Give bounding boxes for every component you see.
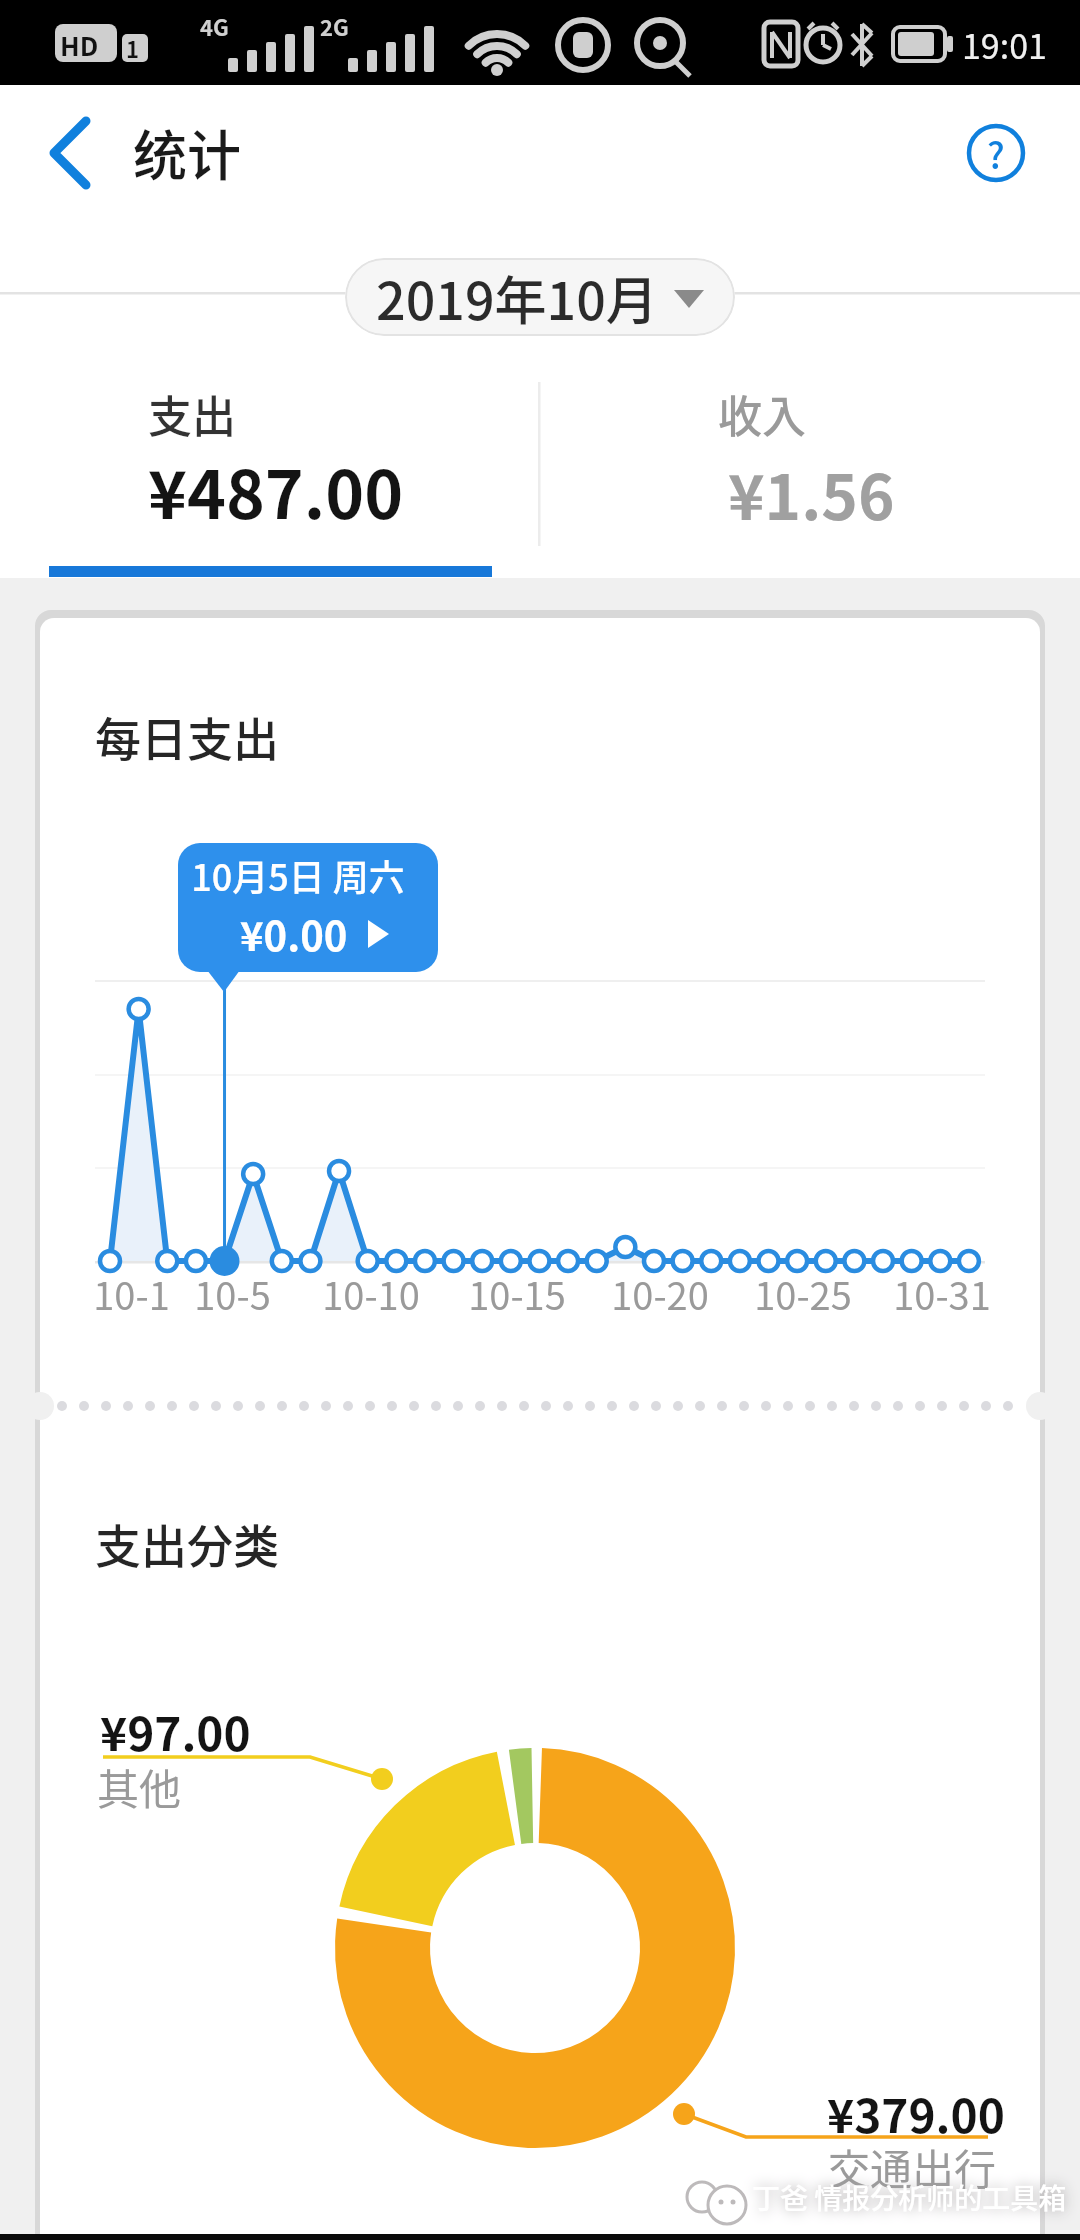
staticText: HD xyxy=(60,26,99,64)
staticText: ¥379.00 xyxy=(827,2080,1005,2147)
button[interactable]: 2019年10月 xyxy=(345,258,735,336)
staticText: 10-10 xyxy=(322,1266,420,1321)
staticText: 交通出行 xyxy=(828,2136,997,2197)
button[interactable] xyxy=(541,360,1031,575)
button[interactable] xyxy=(20,100,120,210)
staticText: 收入 xyxy=(718,382,806,446)
staticText: ¥1.56 xyxy=(728,448,895,538)
staticText: 丁爸 情报分析师的工具箱 xyxy=(752,2177,1067,2218)
staticText: ¥97.00 xyxy=(100,1698,251,1765)
staticText: 10-31 xyxy=(893,1266,991,1321)
staticText: 1 xyxy=(126,32,139,64)
staticText: 2019年10月 xyxy=(376,260,658,335)
staticText: ¥0.00 xyxy=(240,905,348,963)
button[interactable]: ? xyxy=(956,113,1036,193)
staticText: 统计 xyxy=(133,113,241,191)
staticText: ¥487.00 xyxy=(148,442,404,538)
staticText: 其他 xyxy=(97,1756,182,1817)
staticText: 19:01 xyxy=(962,20,1047,69)
staticText: 10-5 xyxy=(194,1266,271,1321)
staticText: 4G xyxy=(200,10,229,42)
staticText: 2G xyxy=(320,10,349,42)
staticText: 10-20 xyxy=(611,1266,709,1321)
staticText: 10月5日 周六 xyxy=(191,849,405,901)
staticText: 支出 xyxy=(148,382,236,446)
staticText: ? xyxy=(987,127,1005,179)
staticText: 10-25 xyxy=(754,1266,852,1321)
staticText: 10-15 xyxy=(468,1266,566,1321)
staticText: 10-1 xyxy=(93,1266,170,1321)
staticText: 每日支出 xyxy=(95,703,279,770)
staticText: 支出分类 xyxy=(95,1510,279,1577)
button[interactable] xyxy=(49,360,539,575)
button[interactable] xyxy=(178,843,438,972)
